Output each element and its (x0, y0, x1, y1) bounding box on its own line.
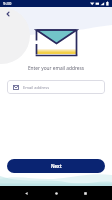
button[interactable]: Back (2, 8, 14, 20)
button[interactable]: Recent apps (83, 191, 88, 196)
button[interactable]: Home (54, 191, 59, 196)
staticText: 9:30 (3, 1, 12, 7)
button[interactable]: Email address (7, 80, 105, 94)
staticText: Next (51, 163, 62, 169)
button[interactable]: Back (24, 191, 29, 196)
staticText: Enter your email address (0, 65, 112, 72)
staticText: Email address (23, 85, 50, 90)
button[interactable]: Next (7, 159, 105, 173)
